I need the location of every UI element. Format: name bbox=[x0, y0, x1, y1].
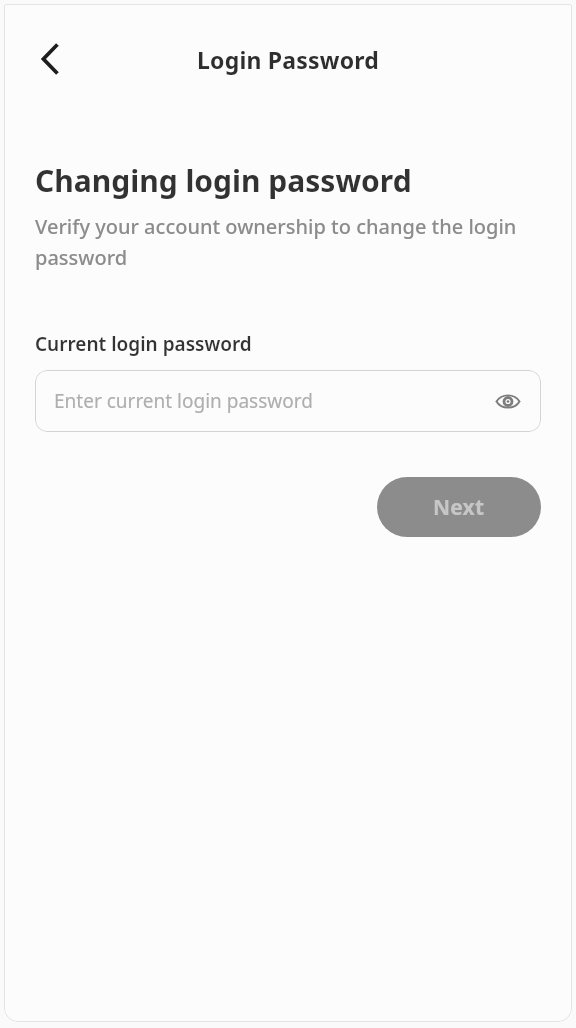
staticText: Login Password bbox=[197, 44, 379, 75]
staticText: Next bbox=[433, 493, 485, 522]
button[interactable]: Enter current login password bbox=[35, 370, 541, 432]
staticText: Current login password bbox=[35, 331, 252, 357]
staticText: Enter current login password bbox=[54, 388, 491, 414]
staticText: Verify your account ownership to change … bbox=[35, 213, 541, 271]
button[interactable]: Show password bbox=[491, 384, 525, 418]
button[interactable]: Back bbox=[26, 35, 74, 83]
button[interactable]: Next bbox=[377, 477, 541, 537]
staticText: Changing login password bbox=[35, 160, 412, 201]
